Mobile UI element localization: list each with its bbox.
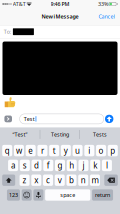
button[interactable]: Dictate bbox=[33, 189, 43, 201]
staticText: i bbox=[88, 145, 90, 156]
button[interactable]: g bbox=[55, 160, 65, 171]
staticText: q bbox=[5, 145, 10, 156]
button[interactable]: a bbox=[8, 160, 18, 171]
staticText: b bbox=[69, 175, 74, 185]
button[interactable]: z bbox=[20, 174, 30, 186]
button[interactable]: m bbox=[90, 174, 100, 186]
staticText: z bbox=[23, 175, 27, 185]
staticText: n bbox=[81, 175, 86, 185]
button[interactable]: q bbox=[2, 145, 12, 156]
button[interactable]: u bbox=[73, 145, 83, 156]
staticText: h bbox=[69, 160, 74, 171]
button[interactable]: l bbox=[102, 160, 112, 171]
button[interactable]: Send bbox=[105, 115, 113, 123]
button[interactable]: b bbox=[66, 174, 76, 186]
button[interactable]: r bbox=[37, 145, 47, 156]
staticText: x bbox=[34, 175, 38, 185]
button[interactable]: space bbox=[45, 189, 90, 201]
staticText: l bbox=[106, 160, 108, 171]
staticText: o bbox=[99, 145, 104, 156]
button[interactable]: Tests bbox=[80, 127, 120, 141]
staticText: “Test” bbox=[12, 131, 27, 138]
button[interactable]: o bbox=[96, 145, 106, 156]
staticText: a bbox=[11, 160, 15, 171]
staticText: space bbox=[60, 191, 75, 199]
staticText: r bbox=[41, 145, 44, 156]
staticText: AT&T bbox=[13, 0, 26, 8]
staticText: Cancel bbox=[98, 13, 114, 20]
staticText: m bbox=[91, 175, 98, 185]
button[interactable]: y bbox=[61, 145, 71, 156]
staticText: f bbox=[47, 160, 50, 171]
button[interactable]: Testing bbox=[40, 127, 80, 141]
staticText: p bbox=[110, 145, 115, 156]
button[interactable]: j bbox=[78, 160, 88, 171]
staticText: c bbox=[46, 175, 50, 185]
button[interactable]: p bbox=[108, 145, 118, 156]
button[interactable]: v bbox=[55, 174, 65, 186]
staticText: New iMessage bbox=[41, 13, 78, 20]
staticText: k bbox=[93, 160, 97, 171]
staticText: j bbox=[82, 160, 84, 171]
button[interactable]: s bbox=[20, 160, 30, 171]
staticText: Tests bbox=[93, 131, 107, 138]
button[interactable]: 123 bbox=[7, 189, 20, 201]
staticText: return bbox=[95, 191, 110, 199]
button[interactable]: n bbox=[78, 174, 88, 186]
staticText: 33% bbox=[98, 0, 108, 8]
staticText: e bbox=[28, 145, 33, 156]
button[interactable]: x bbox=[31, 174, 41, 186]
staticText: Test bbox=[24, 115, 35, 122]
staticText: g bbox=[57, 160, 62, 171]
button[interactable]: w bbox=[14, 145, 24, 156]
button[interactable]: c bbox=[43, 174, 53, 186]
staticText: u bbox=[75, 145, 80, 156]
staticText: Testing bbox=[51, 131, 69, 138]
staticText: 9:46 PM bbox=[50, 0, 69, 8]
button[interactable]: d bbox=[31, 160, 41, 171]
staticText: v bbox=[58, 175, 62, 185]
button[interactable]: Shift bbox=[2, 174, 15, 186]
button[interactable]: e bbox=[26, 145, 36, 156]
button[interactable]: Emoji bbox=[22, 189, 32, 201]
staticText: 123 bbox=[9, 191, 18, 199]
staticText: To: bbox=[4, 28, 11, 35]
staticText: y bbox=[64, 145, 68, 156]
button[interactable]: k bbox=[90, 160, 100, 171]
button[interactable]: t bbox=[49, 145, 59, 156]
staticText: w bbox=[16, 145, 22, 156]
button[interactable]: “Test” bbox=[0, 127, 40, 141]
button[interactable]: h bbox=[67, 160, 77, 171]
button[interactable]: App drawer bbox=[4, 115, 12, 122]
button[interactable]: f bbox=[43, 160, 53, 171]
staticText: s bbox=[23, 160, 27, 171]
button[interactable]: Cancel bbox=[98, 8, 120, 25]
staticText: t bbox=[53, 145, 56, 156]
button[interactable]: return bbox=[92, 189, 113, 201]
staticText: d bbox=[34, 160, 39, 171]
button[interactable]: i bbox=[84, 145, 94, 156]
button[interactable]: Delete bbox=[104, 174, 118, 186]
